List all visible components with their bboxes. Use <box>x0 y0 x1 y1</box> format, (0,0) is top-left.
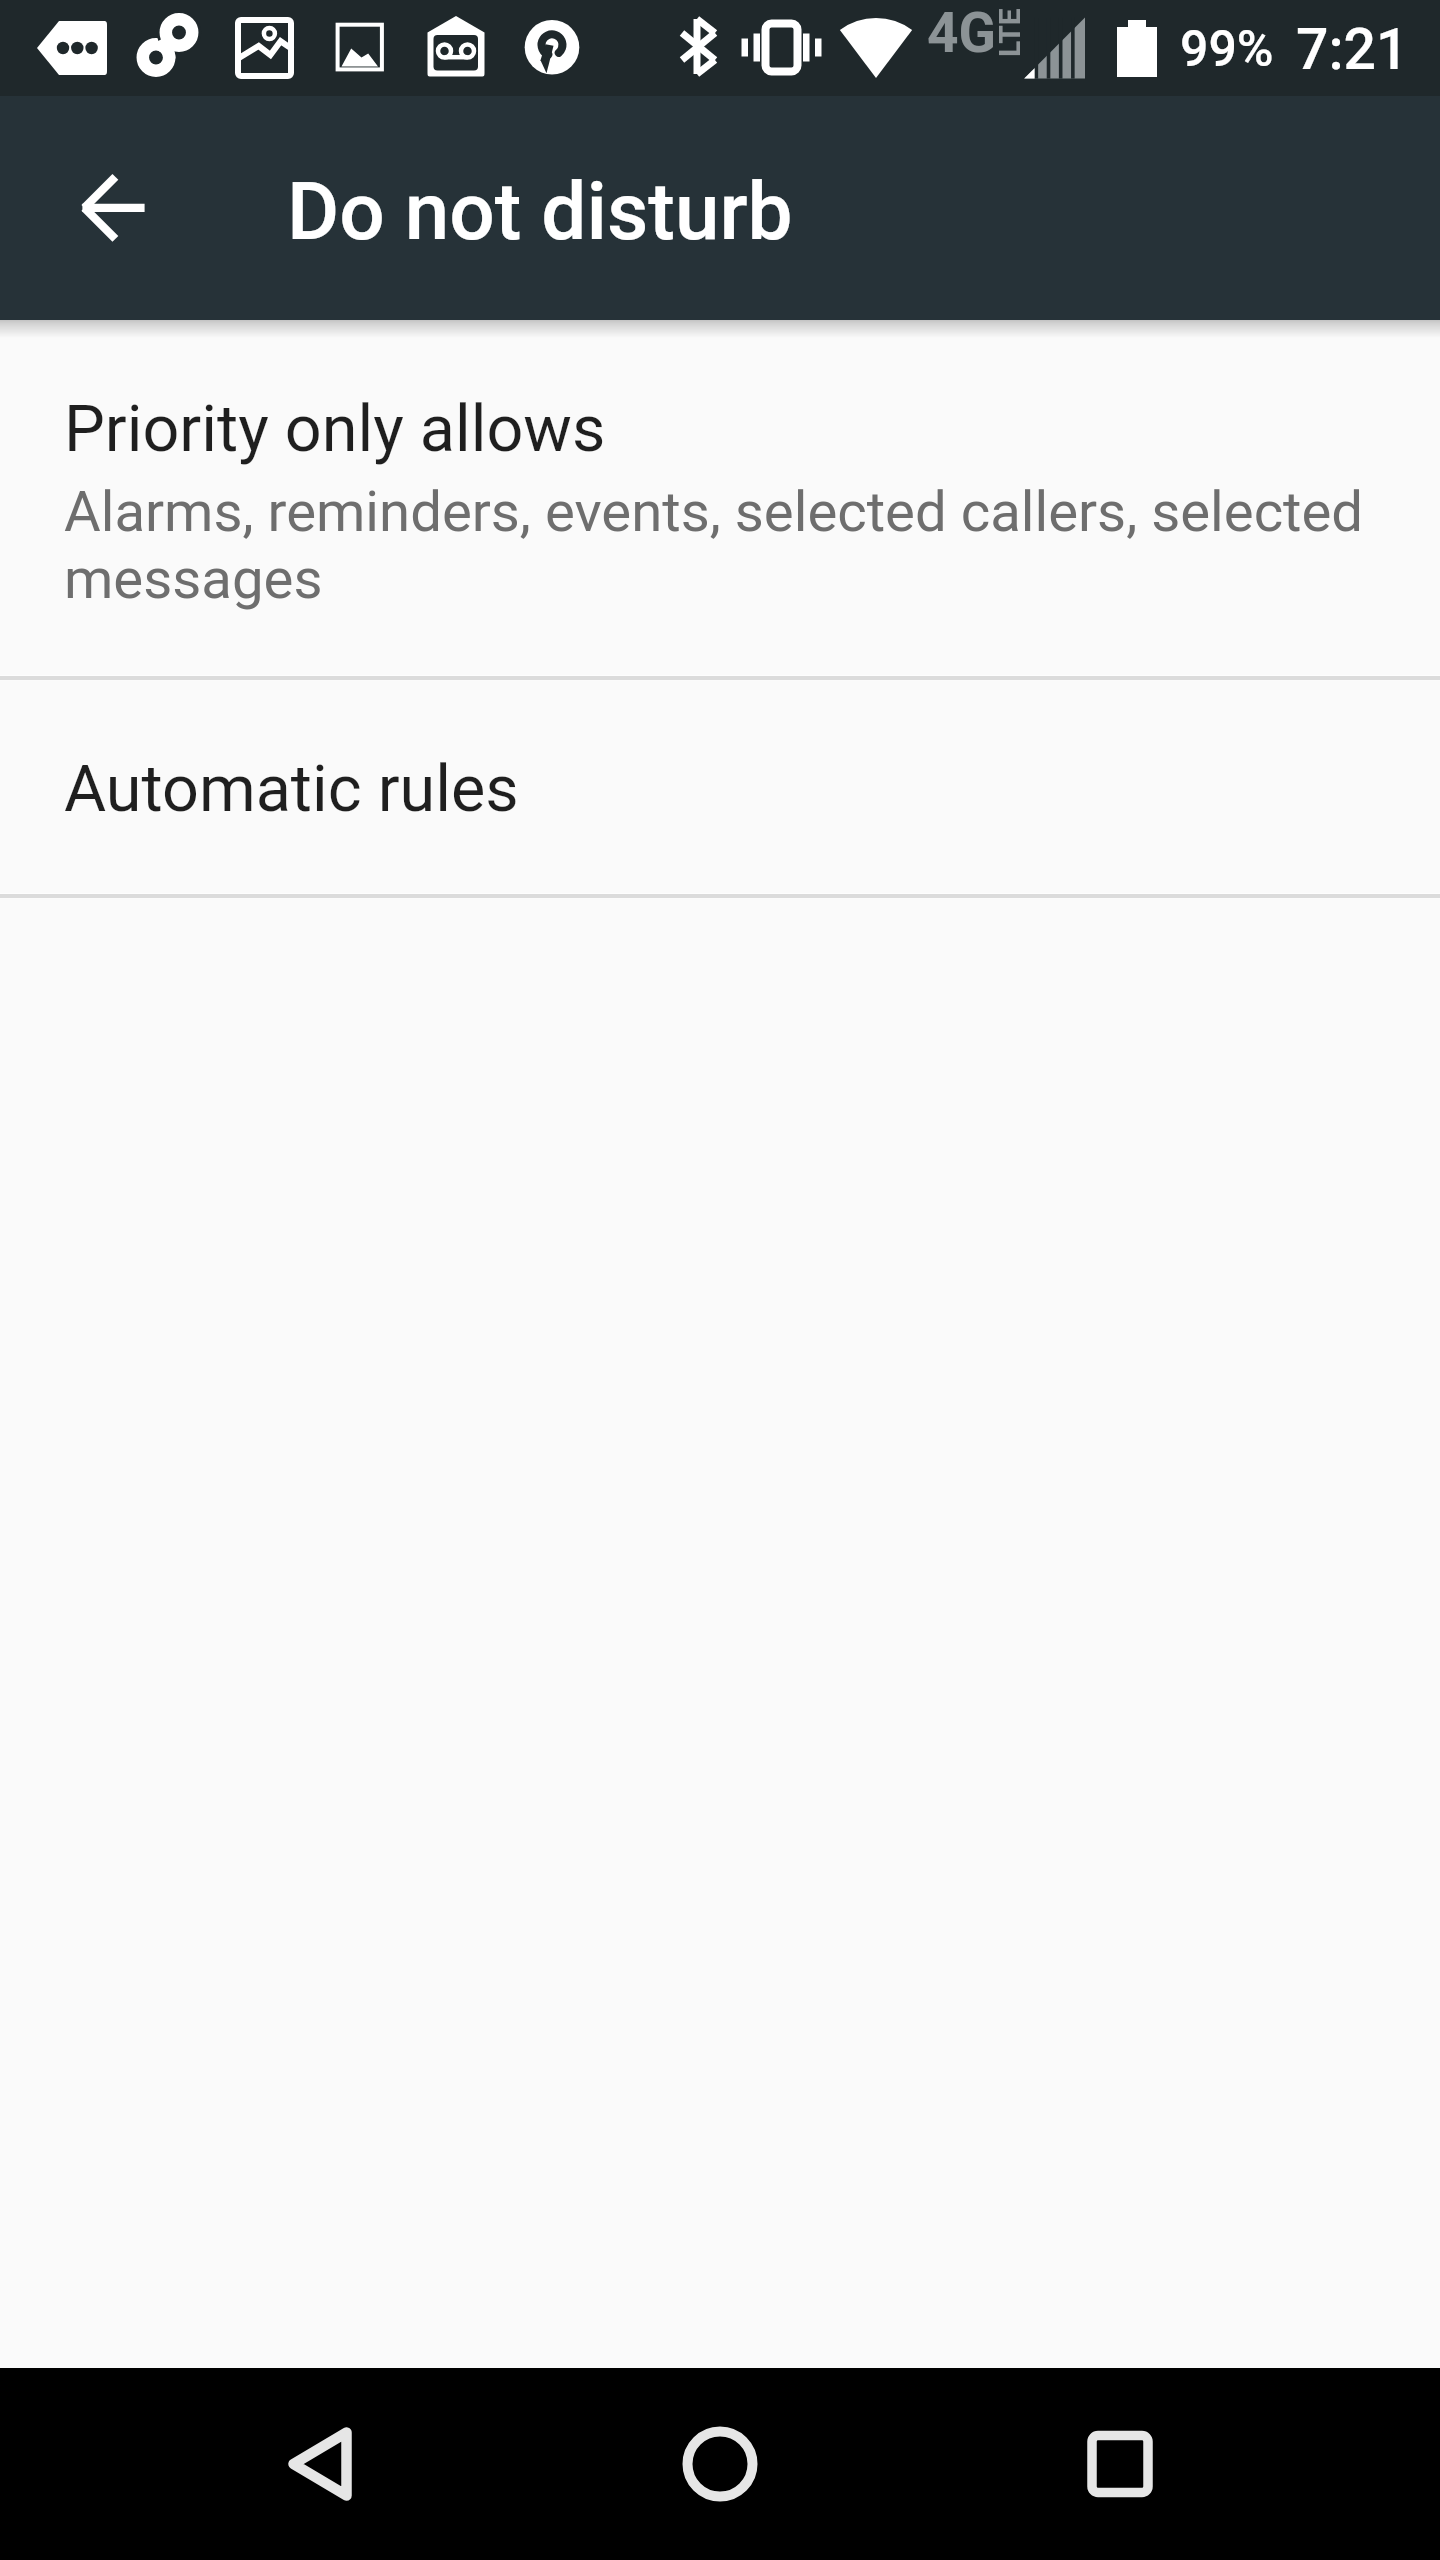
button[interactable]: Navigate up <box>16 112 208 304</box>
staticText: LTE <box>992 8 1027 57</box>
staticText: 4G <box>927 1 997 65</box>
button[interactable]: Automatic rules <box>0 681 1440 893</box>
staticText: Automatic rules <box>64 751 519 827</box>
staticText: Alarms, reminders, events, selected call… <box>64 479 1370 612</box>
staticText: Do not disturb <box>287 165 793 259</box>
staticText: 7:21 <box>1296 16 1409 83</box>
staticText: Priority only allows <box>64 391 606 467</box>
button[interactable]: Priority only allows <box>0 320 1440 675</box>
button[interactable]: Back <box>224 2368 416 2560</box>
button[interactable]: Home <box>624 2368 816 2560</box>
button[interactable]: Recent apps <box>1024 2368 1216 2560</box>
staticText: 99% <box>1180 20 1274 79</box>
